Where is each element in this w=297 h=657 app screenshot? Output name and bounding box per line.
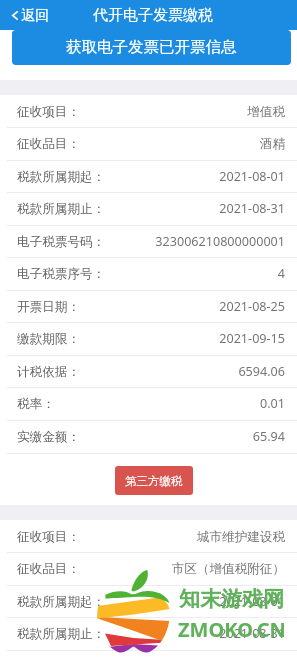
staticText: 增值税: [247, 104, 285, 120]
staticText: 2021-08-01: [219, 593, 285, 610]
staticText: 税款所属期起：: [17, 594, 106, 610]
staticText: 征收品目：: [17, 561, 80, 577]
button[interactable]: 获取电子发票已开票信息: [12, 30, 291, 65]
button[interactable]: 计税依据：: [0, 355, 297, 388]
staticText: 获取电子发票已开票信息: [66, 37, 237, 57]
staticText: 4: [277, 265, 285, 282]
button[interactable]: 税款所属期起：: [0, 585, 297, 618]
button[interactable]: 电子税票号码：: [0, 225, 297, 258]
staticText: 代开电子发票缴税: [93, 6, 213, 25]
staticText: 电子税票号码：: [17, 234, 106, 250]
button[interactable]: 税率：: [0, 387, 297, 420]
staticText: 计税依据：: [17, 364, 80, 380]
button[interactable]: 开票日期：: [0, 290, 297, 323]
staticText: 2021-08-01: [219, 168, 285, 185]
button[interactable]: 征收项目：: [0, 520, 297, 553]
staticText: 税款所属期止：: [17, 201, 106, 217]
staticText: 65.94: [252, 428, 285, 445]
button[interactable]: 实缴金额：: [0, 420, 297, 453]
staticText: 市区（增值税附征）: [171, 561, 285, 577]
staticText: 返回: [21, 6, 50, 24]
staticText: 323006210800000001: [155, 233, 285, 250]
staticText: 2021-08-31: [219, 200, 285, 217]
staticText: 税款所属期止：: [17, 626, 106, 642]
staticText: 开票日期：: [17, 299, 80, 315]
staticText: 酒精: [259, 136, 285, 152]
button[interactable]: 返回: [0, 3, 58, 27]
button[interactable]: 税款所属期止：: [0, 192, 297, 225]
staticText: 0.01: [260, 395, 285, 412]
staticText: 6594.06: [238, 363, 285, 380]
button[interactable]: 税款所属期止：: [0, 617, 297, 650]
staticText: 第三方缴税: [125, 474, 183, 488]
button[interactable]: 电子税票序号：: [0, 257, 297, 290]
staticText: 税率：: [17, 396, 55, 412]
staticText: 2021-08-31: [219, 625, 285, 642]
button[interactable]: 第三方缴税: [115, 466, 193, 495]
staticText: 实缴金额：: [17, 429, 80, 445]
staticText: 城市维护建设税: [196, 529, 285, 545]
staticText: 知末游戏网: [179, 586, 284, 612]
button[interactable]: 征收项目：: [0, 95, 297, 128]
button[interactable]: 缴款期限：: [0, 322, 297, 355]
button[interactable]: 税款所属期起：: [0, 160, 297, 193]
staticText: ZMOKO.CN: [178, 616, 286, 643]
button[interactable]: 征收品目：: [0, 552, 297, 585]
staticText: 税款所属期起：: [17, 169, 106, 185]
staticText: 征收项目：: [17, 104, 80, 120]
staticText: 缴款期限：: [17, 331, 80, 347]
staticText: 征收品目：: [17, 136, 80, 152]
staticText: 2021-09-15: [219, 330, 285, 347]
staticText: 2021-08-25: [219, 298, 285, 315]
staticText: 征收项目：: [17, 529, 80, 545]
staticText: 电子税票序号：: [17, 266, 106, 282]
button[interactable]: 征收品目：: [0, 127, 297, 160]
